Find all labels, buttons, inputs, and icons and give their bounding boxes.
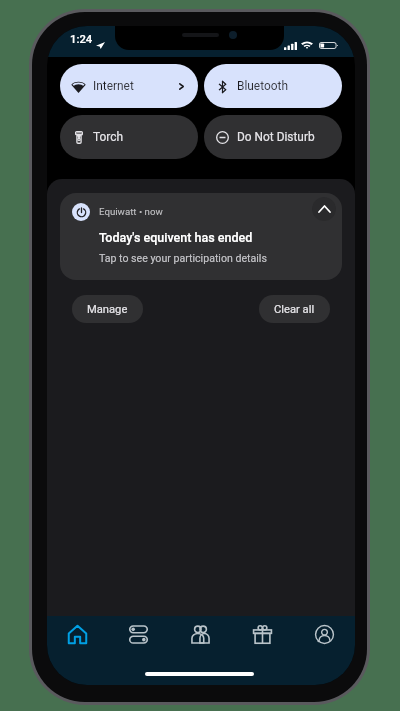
button[interactable]: Manage (72, 295, 143, 323)
staticText: Do Not Disturb (237, 130, 315, 144)
button[interactable]: Community (169, 614, 231, 654)
button[interactable]: Equiwatt • now (60, 193, 342, 280)
button[interactable]: Clear all (259, 295, 330, 323)
staticText: 1:24 (70, 33, 93, 46)
staticText: Today's equivent has ended (99, 230, 253, 245)
button[interactable]: Home (47, 614, 108, 654)
staticText: Manage (87, 303, 128, 316)
button[interactable]: Internet (60, 64, 198, 108)
button[interactable]: Account (293, 614, 355, 654)
staticText: Tap to see your participation details (99, 252, 267, 264)
button[interactable]: Bluetooth (204, 64, 342, 108)
staticText: Clear all (274, 303, 315, 316)
staticText: Equiwatt • now (99, 206, 163, 217)
button[interactable]: Collapse (312, 197, 336, 221)
staticText: Torch (93, 130, 123, 144)
button[interactable]: Torch (60, 115, 198, 159)
staticText: Bluetooth (237, 79, 288, 93)
button[interactable]: Rewards (231, 614, 293, 654)
button[interactable]: Do Not Disturb (204, 115, 342, 159)
staticText: Internet (93, 79, 134, 93)
button[interactable]: Settings (108, 614, 169, 654)
